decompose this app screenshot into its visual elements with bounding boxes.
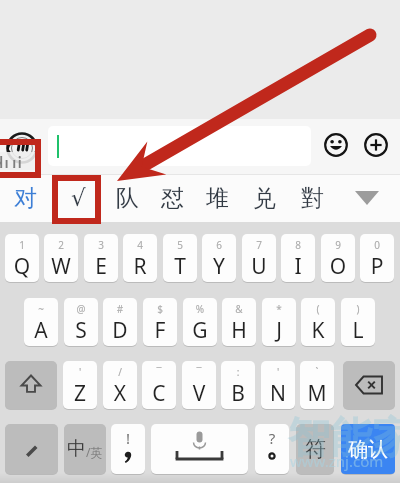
staticText: $ [143, 302, 177, 316]
button[interactable]: 中 [64, 424, 106, 474]
staticText: ' [63, 365, 97, 379]
staticText: 5 [163, 238, 197, 252]
staticText: P [360, 252, 394, 281]
button[interactable]: 堆 [196, 176, 238, 220]
staticText: / [103, 365, 137, 379]
staticText: ¯ [142, 365, 176, 379]
staticText: K [301, 316, 335, 345]
staticText: 智能家 [288, 412, 400, 465]
button[interactable]: ` [300, 361, 334, 409]
button[interactable]: 怼 [151, 176, 193, 220]
staticText: & [222, 302, 256, 316]
button[interactable]: 对 [4, 176, 46, 220]
staticText: D [103, 316, 137, 345]
staticText: 0 [360, 238, 394, 252]
staticText: I [281, 252, 315, 281]
staticText: ( [301, 302, 335, 316]
staticText: X [103, 379, 137, 408]
button[interactable]: 9 [321, 234, 355, 282]
staticText: U [242, 252, 276, 281]
button[interactable]: Backspace [343, 361, 395, 409]
staticText: % [183, 302, 217, 316]
button[interactable]: Shift [5, 361, 57, 409]
button[interactable]: More candidates [346, 176, 388, 220]
staticText: dui [0, 150, 23, 168]
button[interactable]: Space [151, 424, 248, 474]
button[interactable]: 3 [84, 234, 118, 282]
staticText: 队 [116, 184, 139, 213]
button[interactable]: @ [64, 298, 98, 346]
staticText: 對 [301, 184, 324, 213]
staticText: 8 [281, 238, 315, 252]
button[interactable]: ~ [24, 298, 58, 346]
button[interactable]: Emoji [318, 127, 354, 163]
button[interactable] [48, 126, 311, 166]
button[interactable]: 8 [281, 234, 315, 282]
button[interactable]: ¯ [142, 361, 176, 409]
button[interactable]: 符 [296, 424, 334, 474]
button[interactable]: ( [301, 298, 335, 346]
staticText: Z [63, 379, 97, 408]
staticText: ) [341, 302, 375, 316]
staticText: ¯ [182, 365, 216, 379]
button[interactable]: : [221, 361, 255, 409]
staticText: 1 [5, 238, 39, 252]
button[interactable]: 1 [5, 234, 39, 282]
button[interactable]: 兑 [243, 176, 285, 220]
staticText: E [84, 252, 118, 281]
staticText: Y [202, 252, 236, 281]
staticText: 7 [242, 238, 276, 252]
button[interactable]: & [222, 298, 256, 346]
staticText: /英 [86, 444, 103, 460]
staticText: B [221, 379, 255, 408]
staticText: ? [255, 428, 289, 448]
button[interactable]: √ [57, 176, 99, 220]
staticText: 6 [202, 238, 236, 252]
staticText: ` [300, 365, 334, 379]
staticText: : [221, 365, 255, 379]
staticText: J [262, 316, 296, 345]
staticText: 符 [305, 436, 326, 462]
button[interactable]: # [103, 298, 137, 346]
staticText: @ [64, 302, 98, 316]
staticText: 确认 [348, 437, 388, 462]
staticText: 2 [44, 238, 78, 252]
staticText: 4 [123, 238, 157, 252]
button[interactable]: ¯ [182, 361, 216, 409]
staticText: R [123, 252, 157, 281]
button[interactable]: 5 [163, 234, 197, 282]
button[interactable]: ' [261, 361, 295, 409]
staticText: ! [111, 428, 145, 448]
staticText: S [64, 316, 98, 345]
staticText: F [143, 316, 177, 345]
button[interactable]: 6 [202, 234, 236, 282]
staticText: V [182, 379, 216, 408]
staticText: Q [5, 252, 39, 281]
staticText: 3 [84, 238, 118, 252]
button[interactable]: ! [111, 424, 145, 474]
button[interactable]: 4 [123, 234, 157, 282]
button[interactable]: ) [341, 298, 375, 346]
staticText: N [261, 379, 295, 408]
button[interactable]: 7 [242, 234, 276, 282]
button[interactable]: * [262, 298, 296, 346]
button[interactable]: ' [63, 361, 97, 409]
staticText: M [300, 379, 334, 408]
staticText: 兑 [253, 184, 276, 213]
button[interactable]: 确认 [341, 424, 395, 474]
button[interactable]: Handwriting [5, 424, 58, 474]
button[interactable]: Add [358, 127, 394, 163]
staticText: www.znj.com [290, 451, 384, 471]
button[interactable]: % [183, 298, 217, 346]
button[interactable]: 0 [360, 234, 394, 282]
staticText: # [103, 302, 137, 316]
staticText: W [44, 252, 78, 281]
button[interactable]: 队 [106, 176, 148, 220]
button[interactable]: 對 [291, 176, 333, 220]
button[interactable]: ? [255, 424, 289, 474]
button[interactable]: / [103, 361, 137, 409]
button[interactable]: $ [143, 298, 177, 346]
button[interactable]: 2 [44, 234, 78, 282]
staticText: O [321, 252, 355, 281]
staticText: 怼 [161, 184, 184, 213]
